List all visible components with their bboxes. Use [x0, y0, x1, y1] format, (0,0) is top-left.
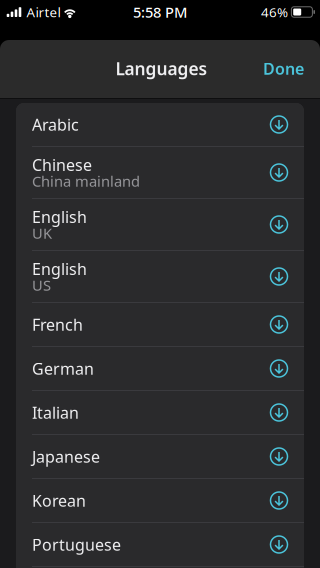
button[interactable]: Japanese [16, 435, 304, 479]
button[interactable]: Italian [16, 391, 304, 435]
staticText: Korean [32, 490, 86, 511]
button[interactable]: Done [245, 48, 320, 89]
staticText: Italian [32, 402, 79, 423]
staticText: English [32, 258, 87, 279]
staticText: 46% [261, 3, 288, 21]
button[interactable]: Chinese [16, 147, 304, 199]
staticText: UK [32, 223, 52, 243]
button[interactable]: Arabic [16, 103, 304, 147]
staticText: English [32, 206, 87, 227]
staticText: French [32, 314, 83, 335]
staticText: China mainland [32, 171, 140, 191]
button[interactable]: Korean [16, 479, 304, 523]
staticText: 5:58 PM [133, 2, 187, 22]
button[interactable]: German [16, 347, 304, 391]
staticText: Arabic [32, 114, 79, 135]
staticText: Japanese [32, 446, 100, 467]
staticText: Airtel [26, 3, 60, 21]
staticText: German [32, 358, 94, 379]
button[interactable]: English [16, 199, 304, 251]
staticText: Chinese [32, 154, 92, 175]
button[interactable]: Portuguese [16, 523, 304, 567]
staticText: Portuguese [32, 534, 121, 555]
staticText: Languages [115, 57, 207, 80]
button[interactable]: French [16, 303, 304, 347]
button[interactable]: English [16, 251, 304, 303]
staticText: Done [263, 58, 304, 79]
staticText: US [32, 275, 51, 295]
